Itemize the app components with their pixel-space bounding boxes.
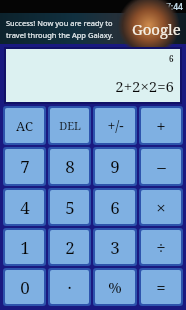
button[interactable]: +/- bbox=[95, 108, 135, 143]
staticText: 3G bbox=[143, 5, 149, 10]
button[interactable]: 6 bbox=[95, 190, 135, 224]
button[interactable]: AC bbox=[5, 108, 44, 143]
staticText: ÷ bbox=[156, 236, 166, 259]
button[interactable]: 7 bbox=[5, 149, 44, 184]
staticText: 2 bbox=[65, 236, 75, 259]
button[interactable]: 1 bbox=[5, 230, 44, 264]
staticText: 7 bbox=[20, 155, 30, 178]
staticText: 2+2×2=6 bbox=[115, 76, 174, 96]
staticText: travel through the App Galaxy. bbox=[6, 30, 114, 40]
staticText: 6 bbox=[110, 196, 120, 219]
staticText: × bbox=[156, 196, 166, 219]
button[interactable]: DEL bbox=[50, 108, 89, 143]
staticText: +/- bbox=[107, 116, 124, 135]
staticText: 3 bbox=[110, 236, 120, 259]
button[interactable]: 8 bbox=[50, 149, 89, 184]
staticText: – bbox=[157, 155, 166, 178]
staticText: % bbox=[108, 277, 122, 297]
button[interactable]: 0 bbox=[5, 270, 44, 304]
staticText: = bbox=[156, 276, 166, 299]
button[interactable]: 4 bbox=[5, 190, 44, 224]
button[interactable]: 9 bbox=[95, 149, 135, 184]
staticText: 4 bbox=[20, 196, 30, 219]
staticText: 7:44 bbox=[166, 1, 183, 13]
staticText: 6 bbox=[169, 53, 174, 64]
staticText: Success! Now you are ready to bbox=[6, 18, 113, 28]
staticText: + bbox=[156, 114, 166, 137]
button[interactable]: · bbox=[50, 270, 89, 304]
staticText: 1 bbox=[20, 236, 30, 259]
staticText: · bbox=[67, 276, 72, 299]
staticText: Google bbox=[132, 19, 181, 39]
button[interactable]: 2 bbox=[50, 230, 89, 264]
staticText: 8 bbox=[65, 155, 75, 178]
staticText: AC bbox=[16, 117, 33, 135]
button[interactable]: % bbox=[95, 270, 135, 304]
button[interactable]: + bbox=[141, 108, 181, 143]
button[interactable]: 3 bbox=[95, 230, 135, 264]
staticText: 9 bbox=[110, 155, 120, 178]
staticText: 5 bbox=[65, 196, 75, 219]
button[interactable]: = bbox=[141, 270, 181, 304]
staticText: DEL bbox=[59, 118, 81, 133]
button[interactable]: ÷ bbox=[141, 230, 181, 264]
staticText: 0 bbox=[20, 276, 30, 299]
button[interactable]: – bbox=[141, 149, 181, 184]
button[interactable]: × bbox=[141, 190, 181, 224]
button[interactable]: 5 bbox=[50, 190, 89, 224]
